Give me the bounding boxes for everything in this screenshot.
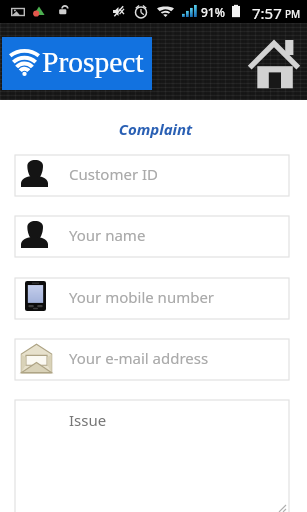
button[interactable]: Your name [15, 216, 289, 257]
staticText: Your name [69, 225, 146, 245]
button[interactable]: Prospect [2, 37, 152, 90]
button[interactable]: Customer ID [15, 155, 289, 196]
staticText: Prospect [42, 46, 144, 79]
staticText: 7:57 [252, 3, 282, 23]
button[interactable]: Issue [15, 400, 289, 512]
staticText: Your e-mail address [69, 348, 209, 368]
staticText: Complaint [2, 119, 307, 139]
staticText: 91% [201, 4, 225, 20]
staticText: Your mobile number [69, 287, 215, 307]
button[interactable]: Home [247, 39, 301, 89]
staticText: Issue [69, 410, 107, 430]
staticText: PM [285, 7, 301, 21]
button[interactable]: Your mobile number [15, 278, 289, 319]
staticText: Customer ID [69, 164, 159, 184]
button[interactable]: Your e-mail address [15, 339, 289, 380]
